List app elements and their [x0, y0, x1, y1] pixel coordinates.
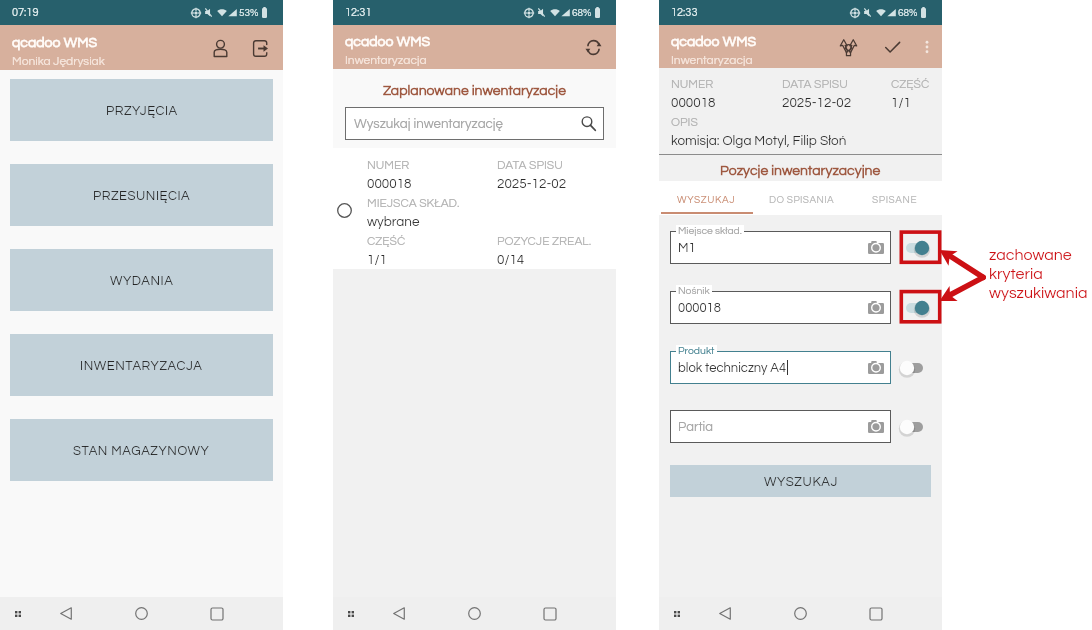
staticText: NUMER [671, 78, 714, 90]
staticText: kryteria [989, 266, 1043, 282]
button[interactable]: Back [50, 597, 82, 630]
button[interactable]: Wyszukaj inwentaryzację [345, 107, 604, 140]
staticText: PRZESUNIĘCIA [93, 189, 191, 202]
staticText: MIEJSCA SKŁAD. [367, 197, 460, 209]
button[interactable]: blok techniczny A4 [670, 351, 891, 384]
button[interactable]: PRZESUNIĘCIA [10, 164, 273, 226]
button[interactable]: Split positions [829, 27, 867, 67]
staticText: NUMER [367, 159, 410, 171]
staticText: Partia [678, 420, 714, 433]
staticText: Monika Jędrysiak [12, 55, 105, 67]
staticText: 2025-12-02 [782, 96, 852, 110]
button[interactable]: Criterion enabled [905, 300, 933, 316]
staticText: PRZYJĘCIA [106, 104, 178, 117]
button[interactable]: Confirm [873, 27, 911, 67]
staticText: 000018 [367, 177, 412, 191]
staticText: WYDANIA [110, 274, 174, 287]
staticText: OPIS [671, 116, 698, 128]
staticText: 07:19 [12, 7, 39, 18]
button[interactable]: WYDANIA [10, 249, 273, 311]
staticText: INWENTARYZACJA [80, 359, 203, 372]
button[interactable]: DO SPISANIA [754, 183, 848, 217]
staticText: Zaplanowane inwentaryzacje [383, 84, 566, 98]
staticText: 53% [239, 8, 259, 18]
staticText: Wyszukaj inwentaryzację [354, 117, 503, 131]
button[interactable]: Home [784, 597, 817, 630]
staticText: DO SPISANIA [769, 195, 834, 205]
staticText: 000018 [678, 301, 721, 314]
button[interactable]: Overview [200, 597, 233, 630]
button[interactable]: Partia [670, 410, 891, 443]
button[interactable]: SPISANE [848, 183, 942, 217]
staticText: Inwentaryzacja [671, 54, 753, 66]
staticText: Pozycje inwentaryzacyjne [720, 164, 881, 178]
button[interactable]: Overview [859, 597, 892, 630]
staticText: 000018 [671, 96, 716, 110]
button[interactable]: Keyboard [3, 597, 32, 630]
staticText: DATA SPISU [782, 78, 848, 90]
staticText: WYSZUKAJ [677, 195, 736, 205]
staticText: CZĘŚĆ [367, 235, 406, 247]
staticText: 68% [572, 8, 592, 18]
button[interactable]: STAN MAGAZYNOWY [10, 419, 273, 481]
button[interactable]: Criterion enabled [905, 240, 933, 256]
button[interactable]: INWENTARYZACJA [10, 334, 273, 396]
button[interactable]: More options [911, 27, 942, 67]
staticText: komisja: Olga Motyl, Filip Słoń [671, 134, 847, 148]
button[interactable]: Back [709, 597, 741, 630]
staticText: 0/14 [497, 253, 525, 267]
staticText: 2025-12-02 [497, 177, 567, 191]
staticText: zachowane [989, 247, 1072, 263]
staticText: CZĘŚĆ [891, 78, 930, 90]
staticText: Miejsce skład. [678, 225, 742, 236]
button[interactable]: M1 [670, 231, 891, 264]
staticText: Nośnik [678, 285, 710, 296]
button[interactable]: WYSZUKAJ [670, 465, 931, 497]
staticText: Inwentaryzacja [345, 54, 427, 66]
staticText: WYSZUKAJ [764, 475, 838, 488]
button[interactable]: Log out [240, 28, 280, 68]
button[interactable]: PRZYJĘCIA [10, 79, 273, 141]
button[interactable]: Criterion disabled [905, 419, 933, 435]
staticText: 12:33 [671, 7, 698, 18]
staticText: POZYCJE ZREAL. [497, 235, 592, 247]
staticText: DATA SPISU [497, 159, 563, 171]
button[interactable]: Refresh [573, 27, 613, 67]
staticText: M1 [678, 241, 696, 254]
staticText: qcadoo WMS [12, 36, 98, 50]
staticText: Produkt [678, 345, 715, 356]
staticText: blok techniczny A4 [678, 361, 787, 374]
button[interactable]: Home [125, 597, 158, 630]
staticText: STAN MAGAZYNOWY [73, 444, 210, 457]
button[interactable]: Keyboard [336, 597, 365, 630]
button[interactable]: Overview [533, 597, 566, 630]
button[interactable]: Home [458, 597, 491, 630]
staticText: qcadoo WMS [671, 35, 757, 49]
staticText: 68% [898, 8, 918, 18]
staticText: wyszukiwania [989, 285, 1088, 301]
staticText: SPISANE [872, 195, 918, 205]
staticText: qcadoo WMS [345, 35, 431, 49]
staticText: 1/1 [891, 96, 911, 110]
staticText: wybrane [367, 215, 420, 229]
button[interactable]: 000018 [670, 291, 891, 324]
button[interactable]: Criterion disabled [905, 360, 933, 376]
button[interactable]: WYSZUKAJ [659, 183, 754, 217]
staticText: 12:31 [345, 7, 372, 18]
staticText: 1/1 [367, 253, 387, 267]
button[interactable]: User account [200, 28, 240, 68]
button[interactable]: Back [383, 597, 415, 630]
button[interactable]: NUMER [333, 148, 616, 269]
button[interactable]: Keyboard [662, 597, 691, 630]
